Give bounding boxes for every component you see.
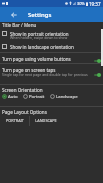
button[interactable]: Show in portrait orientation: [0, 28, 103, 40]
staticText: 19:37: [89, 1, 101, 7]
button[interactable]: Turn page using volume buttons: [0, 53, 103, 63]
button[interactable]: Auto: [2, 93, 18, 99]
staticText: Single tap for next page and double tap …: [2, 72, 88, 77]
staticText: Title Bar / Menu: [2, 22, 37, 28]
staticText: Page Layout Options: [2, 109, 47, 115]
staticText: Landscape: [56, 93, 78, 99]
staticText: When hidden, swipe down to show: [10, 35, 68, 40]
staticText: Settings: [28, 11, 52, 19]
staticText: Show in landscape orientation: [10, 44, 74, 50]
button[interactable]: Landscape: [50, 93, 78, 99]
staticText: Show in portrait orientation: [10, 31, 69, 37]
staticText: Turn page using volume buttons: [2, 56, 71, 62]
button[interactable]: Portrait: [23, 93, 45, 99]
staticText: Portrait: [29, 93, 45, 99]
staticText: Turn page on screen taps: [2, 67, 56, 73]
button[interactable]: Turn page on screen taps: [0, 64, 103, 80]
button[interactable]: LANDSCAPE: [30, 115, 62, 126]
button[interactable]: PORTRAIT: [0, 115, 29, 126]
staticText: LANDSCAPE: [35, 118, 57, 123]
button[interactable]: Show in landscape orientation: [0, 42, 103, 51]
staticText: Screen Orientation: [2, 87, 43, 93]
staticText: PORTRAIT: [6, 118, 24, 123]
button[interactable]: Back: [7, 8, 20, 21]
staticText: Auto: [8, 93, 18, 99]
staticText: 30%: [77, 1, 85, 6]
